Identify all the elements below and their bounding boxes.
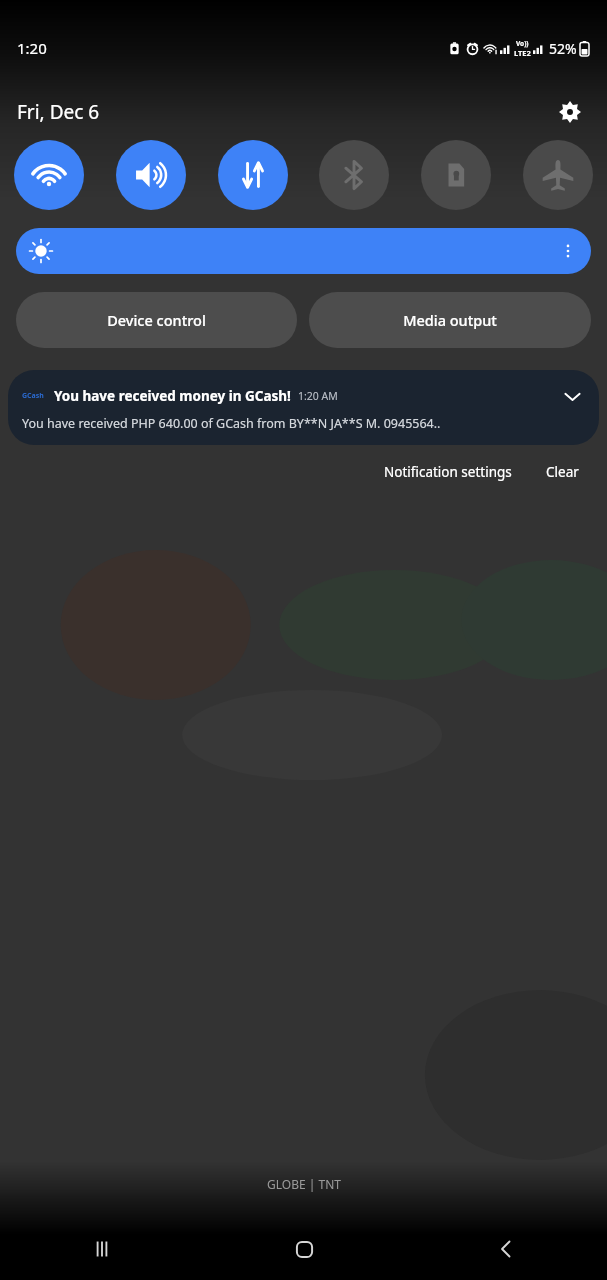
staticText: Notification settings: [384, 463, 512, 481]
staticText: You have received PHP 640.00 of GCash fr…: [22, 415, 441, 432]
staticText: Media output: [403, 310, 497, 330]
staticText: Clear: [546, 463, 579, 481]
staticText: GLOBE | TNT: [267, 1176, 341, 1192]
button[interactable]: Brightness: [16, 228, 591, 274]
button[interactable]: GCash: [8, 370, 599, 445]
button[interactable]: Wi-Fi: [14, 140, 84, 210]
button[interactable]: Home: [203, 1218, 405, 1280]
staticText: Device control: [107, 310, 206, 330]
staticText: Fri, Dec 6: [17, 99, 100, 125]
staticText: 1:20 AM: [298, 389, 338, 403]
staticText: 52%: [549, 39, 577, 58]
button[interactable]: Flight mode: [523, 140, 593, 210]
button[interactable]: Bluetooth: [319, 140, 389, 210]
button[interactable]: Sound: [116, 140, 186, 210]
button[interactable]: Recents: [0, 1218, 203, 1280]
button[interactable]: Media output: [309, 292, 591, 348]
button[interactable]: Expand notification: [559, 383, 585, 409]
button[interactable]: Back: [405, 1218, 607, 1280]
staticText: LTE2: [514, 48, 531, 58]
staticText: GCash: [22, 391, 44, 401]
button[interactable]: SIM card manager: [421, 140, 491, 210]
staticText: You have received money in GCash!: [54, 387, 291, 405]
staticText: Vo)): [516, 39, 529, 48]
button[interactable]: Device control: [16, 292, 297, 348]
button[interactable]: Clear: [540, 457, 585, 487]
button[interactable]: Mobile data: [218, 140, 288, 210]
staticText: 1:20: [17, 38, 47, 58]
button[interactable]: Settings: [553, 95, 587, 129]
button[interactable]: Notification settings: [378, 457, 518, 487]
